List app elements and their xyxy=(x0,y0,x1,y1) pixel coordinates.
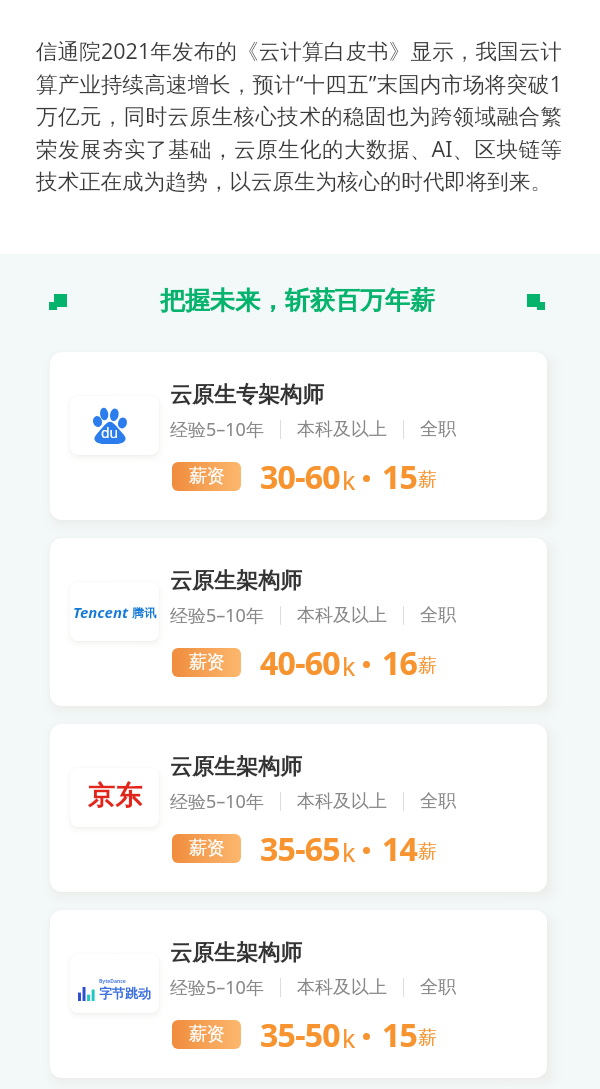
staticText: 经验5–10年 xyxy=(170,975,264,1000)
staticText: 16 xyxy=(382,641,418,685)
button[interactable]: Tencent xyxy=(50,538,547,706)
button[interactable]: du xyxy=(50,352,547,520)
staticText: 本科及以上 xyxy=(297,418,387,441)
staticText: 薪资 xyxy=(189,837,225,860)
staticText: 云原生架构师 xyxy=(170,753,302,781)
staticText: k xyxy=(342,463,356,497)
staticText: 全职 xyxy=(420,790,456,813)
staticText: 15 xyxy=(382,1013,418,1057)
staticText: 全职 xyxy=(420,976,456,999)
staticText: k xyxy=(342,649,356,683)
staticText: k xyxy=(342,835,356,869)
staticText: 35-65 xyxy=(260,827,340,871)
staticText: 京东 xyxy=(88,779,142,813)
staticText: 薪 xyxy=(418,840,437,864)
staticText: 信通院2021年发布的《云计算白皮书》显示，我国云计算产业持续高速增长，预计“十… xyxy=(36,36,562,195)
staticText: 经验5–10年 xyxy=(170,603,264,628)
staticText: 全职 xyxy=(420,604,456,627)
staticText: Tencent xyxy=(73,602,129,622)
staticText: 14 xyxy=(382,827,418,871)
staticText: 薪资 xyxy=(189,465,225,488)
staticText: 薪 xyxy=(418,1026,437,1050)
staticText: 薪资 xyxy=(189,651,225,674)
staticText: 把握未来，斩获百万年薪 xyxy=(160,285,435,316)
staticText: 经验5–10年 xyxy=(170,789,264,814)
staticText: du xyxy=(101,423,119,442)
button[interactable]: 京东 xyxy=(50,724,547,892)
staticText: 字节跳动 xyxy=(99,985,151,1001)
staticText: 薪 xyxy=(418,654,437,678)
staticText: ByteDance xyxy=(99,978,126,985)
staticText: 全职 xyxy=(420,418,456,441)
staticText: 本科及以上 xyxy=(297,976,387,999)
staticText: 30-60 xyxy=(260,455,340,499)
staticText: 本科及以上 xyxy=(297,790,387,813)
staticText: 35-50 xyxy=(260,1013,340,1057)
staticText: 云原生架构师 xyxy=(170,939,302,967)
staticText: 云原生架构师 xyxy=(170,567,302,595)
staticText: 薪资 xyxy=(189,1023,225,1046)
staticText: 腾讯 xyxy=(132,605,156,620)
staticText: 15 xyxy=(382,455,418,499)
staticText: 40-60 xyxy=(260,641,340,685)
staticText: 薪 xyxy=(418,468,437,492)
staticText: 本科及以上 xyxy=(297,604,387,627)
staticText: 经验5–10年 xyxy=(170,417,264,442)
button[interactable]: ByteDance xyxy=(50,910,547,1078)
staticText: k xyxy=(342,1021,356,1055)
staticText: 云原生专架构师 xyxy=(170,381,324,409)
